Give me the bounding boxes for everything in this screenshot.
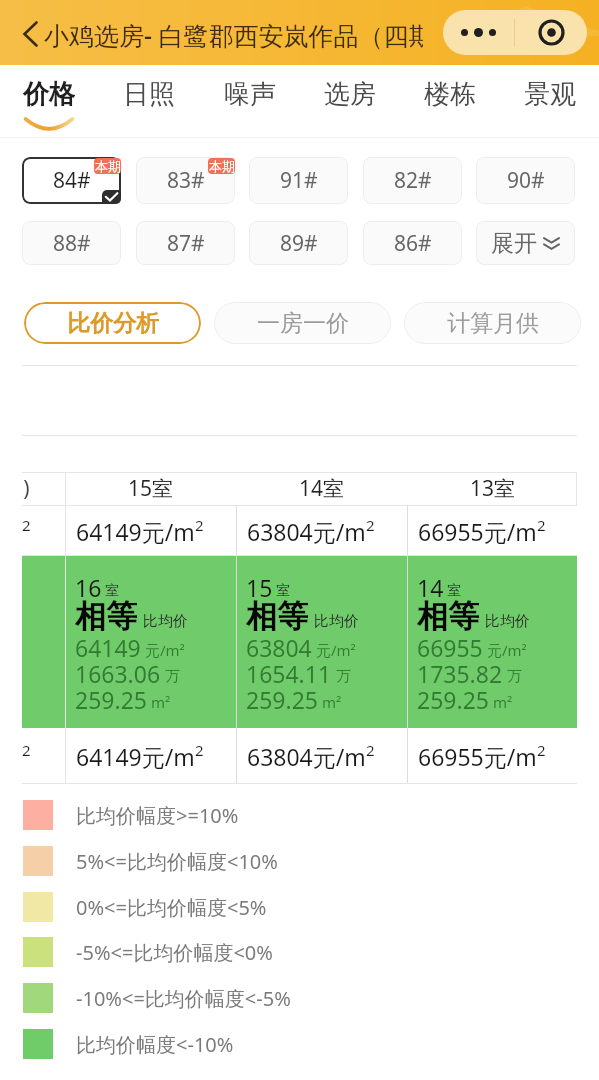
- staticText: 88#: [53, 229, 91, 258]
- staticText: 66955元/m: [418, 516, 537, 546]
- staticText: 元/m²: [487, 640, 527, 660]
- staticText: 相等: [75, 597, 137, 631]
- button[interactable]: 84#: [22, 157, 121, 204]
- staticText: 万: [336, 667, 351, 686]
- staticText: 室: [105, 582, 119, 600]
- staticText: 相等: [246, 597, 308, 631]
- staticText: 2: [22, 515, 31, 535]
- button[interactable]: 88#: [22, 221, 121, 265]
- staticText: 2: [195, 740, 204, 760]
- staticText: 日照: [123, 78, 175, 108]
- staticText: 15室: [128, 474, 174, 503]
- staticText: 63804元/m: [247, 741, 366, 771]
- staticText: 比均价: [314, 612, 359, 631]
- staticText: m²: [322, 692, 342, 712]
- staticText: 小鸡选房- 白鹭郡西安岚作品（四期）: [44, 18, 423, 52]
- staticText: 2: [537, 740, 546, 760]
- staticText: 2: [22, 740, 31, 760]
- staticText: 相等: [417, 597, 479, 631]
- staticText: 2: [195, 515, 204, 535]
- staticText: 万: [507, 667, 522, 686]
- staticText: 景观: [524, 78, 576, 108]
- staticText: 16: [75, 572, 102, 598]
- button[interactable]: 90#: [476, 157, 575, 204]
- staticText: 64149元/m: [76, 516, 195, 546]
- staticText: 室: [447, 582, 461, 600]
- staticText: 2: [366, 515, 375, 535]
- button[interactable]: 一房一价: [214, 302, 391, 344]
- button[interactable]: 计算月供: [404, 302, 581, 344]
- staticText: 元/m²: [316, 640, 356, 660]
- button[interactable]: Back: [15, 19, 45, 49]
- staticText: 89#: [280, 229, 318, 258]
- staticText: 64149元/m: [76, 741, 195, 771]
- button[interactable]: 89#: [249, 221, 348, 265]
- button[interactable]: 82#: [363, 157, 462, 204]
- staticText: 比价分析: [67, 309, 159, 338]
- staticText: 15: [246, 572, 273, 598]
- staticText: 259.25: [246, 684, 318, 712]
- staticText: -5%<=比均价幅度<0%: [76, 939, 273, 966]
- button[interactable]: 比价分析: [24, 302, 201, 344]
- staticText: 2: [537, 515, 546, 535]
- staticText: 13室: [470, 474, 516, 503]
- staticText: 比均价: [485, 612, 530, 631]
- staticText: 一房一价: [257, 309, 349, 338]
- button[interactable]: Close: [515, 10, 587, 55]
- staticText: 83#: [167, 166, 205, 195]
- staticText: 1663.06: [75, 658, 161, 686]
- button[interactable]: 展开: [476, 221, 575, 265]
- staticText: (11室): [22, 474, 30, 503]
- staticText: 66955: [417, 632, 483, 660]
- staticText: 87#: [167, 229, 205, 258]
- staticText: 63804元/m: [247, 516, 366, 546]
- staticText: 楼栋: [424, 78, 476, 108]
- button[interactable]: 价格: [0, 65, 99, 137]
- staticText: m²: [493, 692, 513, 712]
- staticText: m²: [151, 692, 171, 712]
- staticText: 84#: [53, 166, 91, 195]
- button[interactable]: 86#: [363, 221, 462, 265]
- staticText: 63804: [246, 632, 312, 660]
- staticText: 计算月供: [447, 309, 539, 338]
- staticText: 0%<=比均价幅度<5%: [76, 894, 267, 921]
- staticText: 价格: [23, 78, 75, 108]
- staticText: 14: [417, 572, 444, 598]
- staticText: 1735.82: [417, 658, 503, 686]
- button[interactable]: 楼栋: [400, 65, 500, 137]
- staticText: 室: [276, 582, 290, 600]
- button[interactable]: 83#: [136, 157, 235, 204]
- staticText: 86#: [394, 229, 432, 258]
- button[interactable]: 91#: [249, 157, 348, 204]
- staticText: 本期: [209, 158, 235, 174]
- staticText: 90#: [507, 166, 545, 195]
- staticText: 82#: [394, 166, 432, 195]
- staticText: 14室: [299, 474, 345, 503]
- staticText: 66955元/m: [418, 741, 537, 771]
- staticText: 91#: [280, 166, 318, 195]
- button[interactable]: 噪声: [200, 65, 300, 137]
- staticText: 1654.11: [246, 658, 332, 686]
- staticText: 259.25: [75, 684, 147, 712]
- button[interactable]: 日照: [99, 65, 199, 137]
- button[interactable]: More options: [443, 10, 514, 55]
- staticText: 噪声: [224, 78, 276, 108]
- staticText: 比均价幅度>=10%: [76, 802, 239, 829]
- staticText: 万: [165, 667, 180, 686]
- staticText: 比均价: [143, 612, 188, 631]
- staticText: 本期: [95, 158, 121, 174]
- button[interactable]: 选房: [300, 65, 400, 137]
- staticText: 5%<=比均价幅度<10%: [76, 848, 278, 875]
- staticText: 选房: [324, 78, 376, 108]
- staticText: 比均价幅度<-10%: [76, 1031, 234, 1058]
- staticText: 元/m²: [145, 640, 185, 660]
- button[interactable]: 87#: [136, 221, 235, 265]
- staticText: 2: [366, 740, 375, 760]
- button[interactable]: 景观: [500, 65, 599, 137]
- staticText: 64149: [75, 632, 141, 660]
- staticText: 259.25: [417, 684, 489, 712]
- staticText: 展开: [491, 229, 537, 258]
- staticText: -10%<=比均价幅度<-5%: [76, 985, 291, 1012]
